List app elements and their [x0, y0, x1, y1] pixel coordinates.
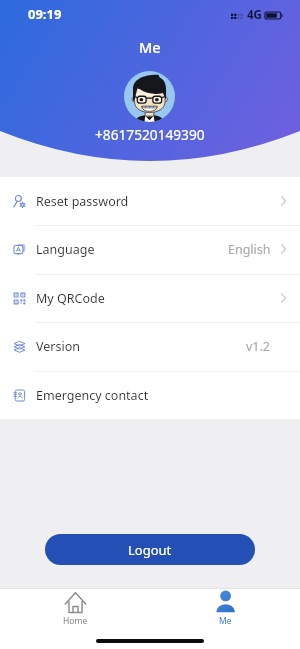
- staticText: v1.2: [246, 338, 271, 355]
- staticText: Language: [36, 241, 95, 258]
- button[interactable]: Me: [150, 589, 300, 627]
- button[interactable]: Home: [0, 589, 150, 627]
- staticText: 09:19: [28, 5, 62, 23]
- staticText: My QRCode: [36, 290, 105, 307]
- staticText: Me: [219, 615, 232, 627]
- staticText: Logout: [128, 541, 172, 559]
- staticText: Reset password: [36, 193, 129, 210]
- button[interactable]: Emergency contact: [0, 371, 300, 419]
- staticText: English: [228, 241, 271, 258]
- staticText: 4G: [247, 7, 262, 23]
- staticText: Version: [36, 338, 80, 355]
- staticText: Home: [63, 615, 88, 627]
- button[interactable]: Reset password: [0, 177, 300, 225]
- staticText: +8617520149390: [95, 125, 205, 144]
- staticText: Emergency contact: [36, 387, 149, 404]
- button[interactable]: Version: [0, 322, 300, 370]
- button[interactable]: Logout: [45, 534, 255, 565]
- staticText: Me: [139, 37, 161, 57]
- button[interactable]: My QRCode: [0, 274, 300, 322]
- button[interactable]: Language: [0, 225, 300, 273]
